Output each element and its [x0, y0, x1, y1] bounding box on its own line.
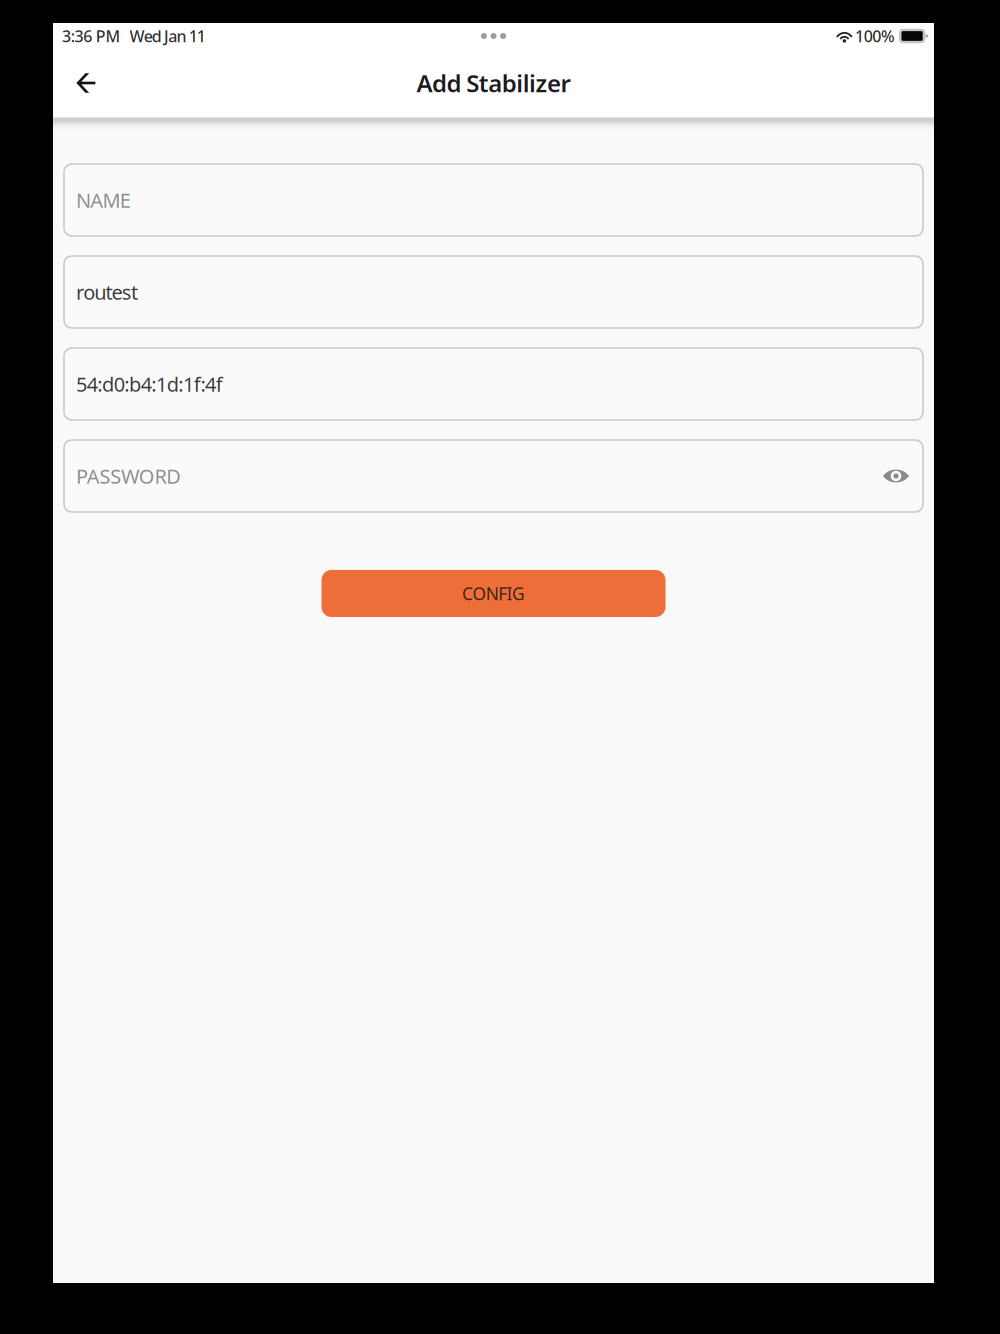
staticText: Wed Jan 11 [129, 25, 206, 47]
button[interactable]: CONFIG [321, 570, 665, 617]
staticText: PASSWORD [76, 463, 181, 489]
staticText: 100% [855, 25, 895, 47]
staticText: CONFIG [462, 582, 525, 605]
staticText: Add Stabilizer [417, 67, 570, 99]
staticText: routest [76, 279, 138, 305]
button[interactable]: Show password [874, 454, 918, 498]
staticText: 54:d0:b4:1d:1f:4f [76, 371, 223, 397]
staticText: 3:36 PM [62, 25, 120, 47]
staticText: NAME [76, 187, 131, 213]
button[interactable]: Back [58, 55, 114, 111]
